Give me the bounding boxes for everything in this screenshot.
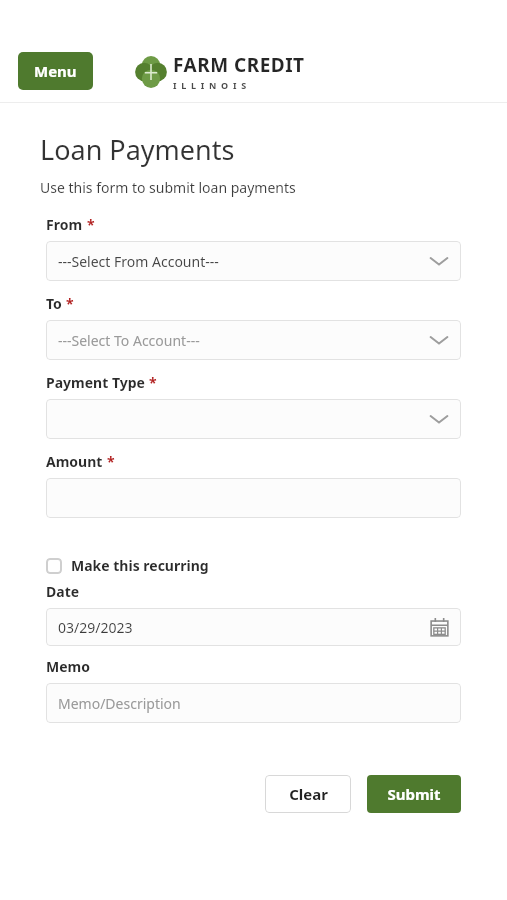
staticText: I L L I N O I S [173,79,507,91]
button[interactable]: Make this recurring [46,556,209,575]
staticText: Memo [46,657,90,676]
staticText: Make this recurring [71,556,209,575]
staticText: FARM CREDIT [173,52,305,78]
staticText: * [149,373,157,392]
button[interactable]: ---Select To Account--- [46,320,461,360]
button[interactable]: Menu [18,52,93,90]
staticText: Date [46,582,80,601]
staticText: ---Select From Account--- [58,252,219,271]
button[interactable]: Submit [367,775,461,813]
staticText: ---Select To Account--- [58,331,200,350]
staticText: * [107,452,115,471]
staticText: Clear [289,784,328,804]
staticText: From [46,215,83,234]
staticText: * [66,294,74,313]
staticText: * [87,215,95,234]
button[interactable] [46,478,461,518]
staticText: Memo/Description [58,694,181,713]
staticText: Loan Payments [40,131,235,168]
staticText: To [46,294,62,313]
button[interactable]: ---Select From Account--- [46,241,461,281]
staticText: Menu [34,61,77,81]
staticText: Use this form to submit loan payments [40,178,296,197]
staticText: Amount [46,452,103,471]
button[interactable]: Memo/Description [46,683,461,723]
button[interactable]: 03/29/2023 [46,608,461,646]
button[interactable] [46,399,461,439]
staticText: Submit [387,784,441,804]
staticText: Payment Type [46,373,145,392]
button[interactable]: Clear [265,775,351,813]
staticText: 03/29/2023 [58,618,133,637]
other: Pick date [430,618,449,637]
